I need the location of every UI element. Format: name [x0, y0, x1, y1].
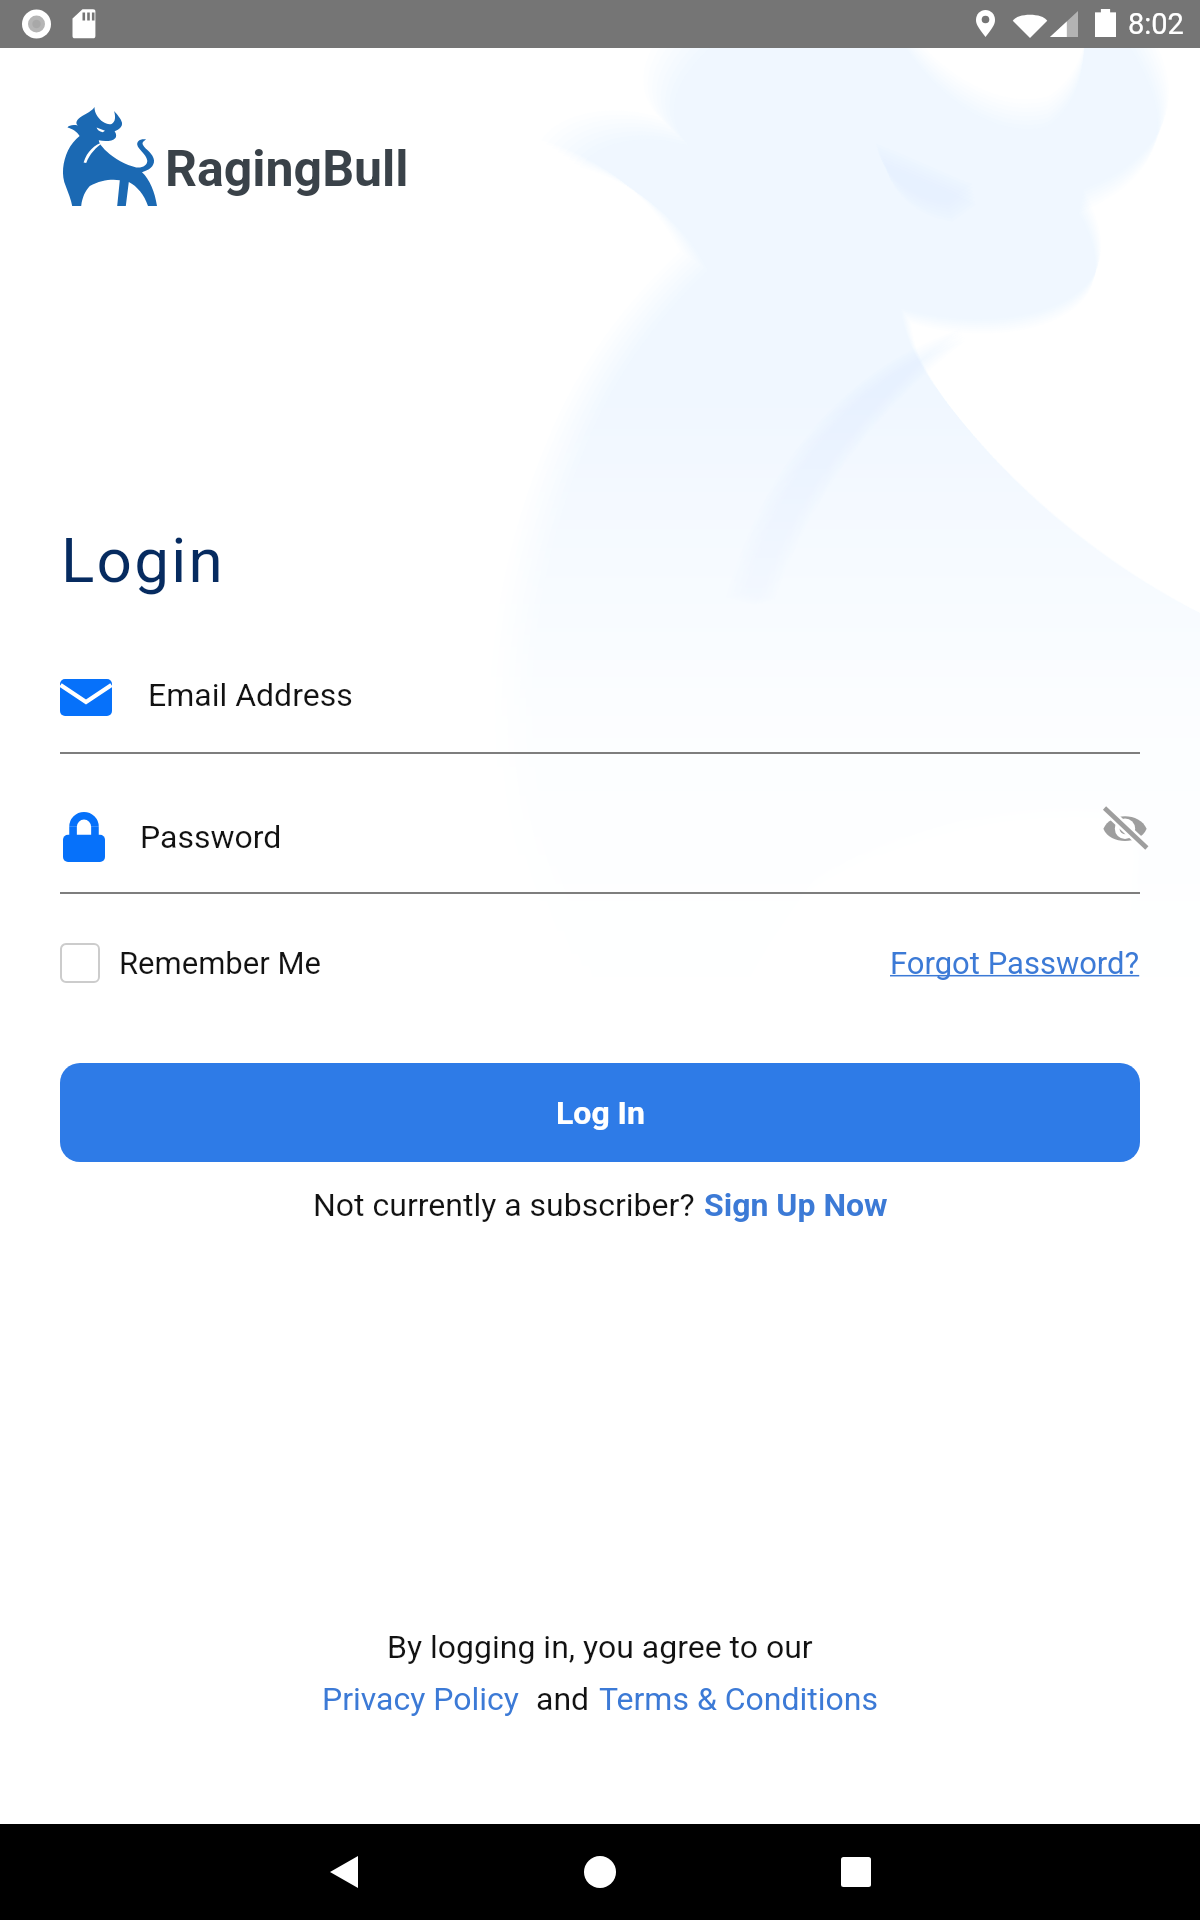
staticText: Email Address [148, 676, 353, 714]
button[interactable]: Log In [60, 1063, 1140, 1162]
button[interactable]: Password [122, 805, 1082, 867]
staticText: Forgot Password? [890, 945, 1140, 981]
button[interactable]: Privacy Policy [322, 1680, 519, 1718]
staticText: Remember Me [119, 945, 321, 981]
button[interactable]: Sign Up Now [704, 1186, 888, 1224]
staticText: Password [140, 818, 282, 856]
staticText: and [536, 1680, 590, 1718]
button[interactable]: Home [552, 1824, 648, 1920]
button[interactable]: Forgot Password? [860, 936, 1140, 990]
staticText: 8:02 [1128, 7, 1184, 41]
button[interactable]: Recent apps [808, 1824, 904, 1920]
staticText: By logging in, you agree to our [387, 1628, 813, 1666]
button[interactable]: Remember Me [60, 936, 321, 990]
button[interactable]: Terms & Conditions [599, 1680, 878, 1718]
staticText: Log In [556, 1094, 645, 1132]
staticText: Login [61, 524, 225, 597]
button[interactable]: Show password [1090, 793, 1160, 863]
staticText: RagingBull [165, 140, 409, 199]
button[interactable]: Back [296, 1824, 392, 1920]
button[interactable]: Email Address [130, 663, 1140, 725]
staticText: Not currently a subscriber? [313, 1186, 695, 1224]
